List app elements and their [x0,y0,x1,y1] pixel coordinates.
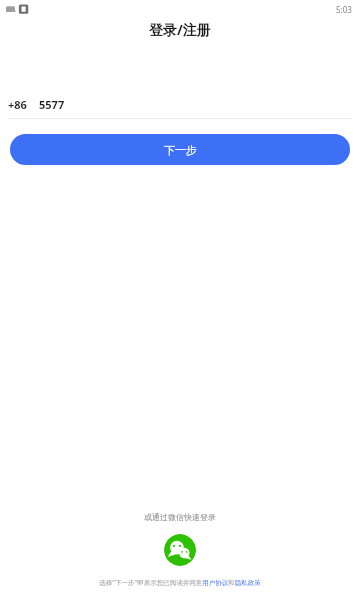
staticText: 选择"下一步"即表示您已阅读并同意用户协议和隐私政策 [99,578,261,587]
staticText: 或通过微信快速登录 [144,512,216,522]
staticText: 登录/注册 [149,20,211,39]
button[interactable]: +86 [0,92,360,116]
staticText: 下一步 [164,143,197,157]
button[interactable]: 微信登录 [164,534,196,566]
button[interactable]: 下一步 [10,134,350,165]
staticText: 5577 [39,97,65,112]
staticText: 5:03 [336,4,352,15]
button[interactable]: 选择"下一步"即表示您已阅读并同意用户协议和隐私政策 [16,578,344,587]
staticText: +86 [8,97,27,112]
